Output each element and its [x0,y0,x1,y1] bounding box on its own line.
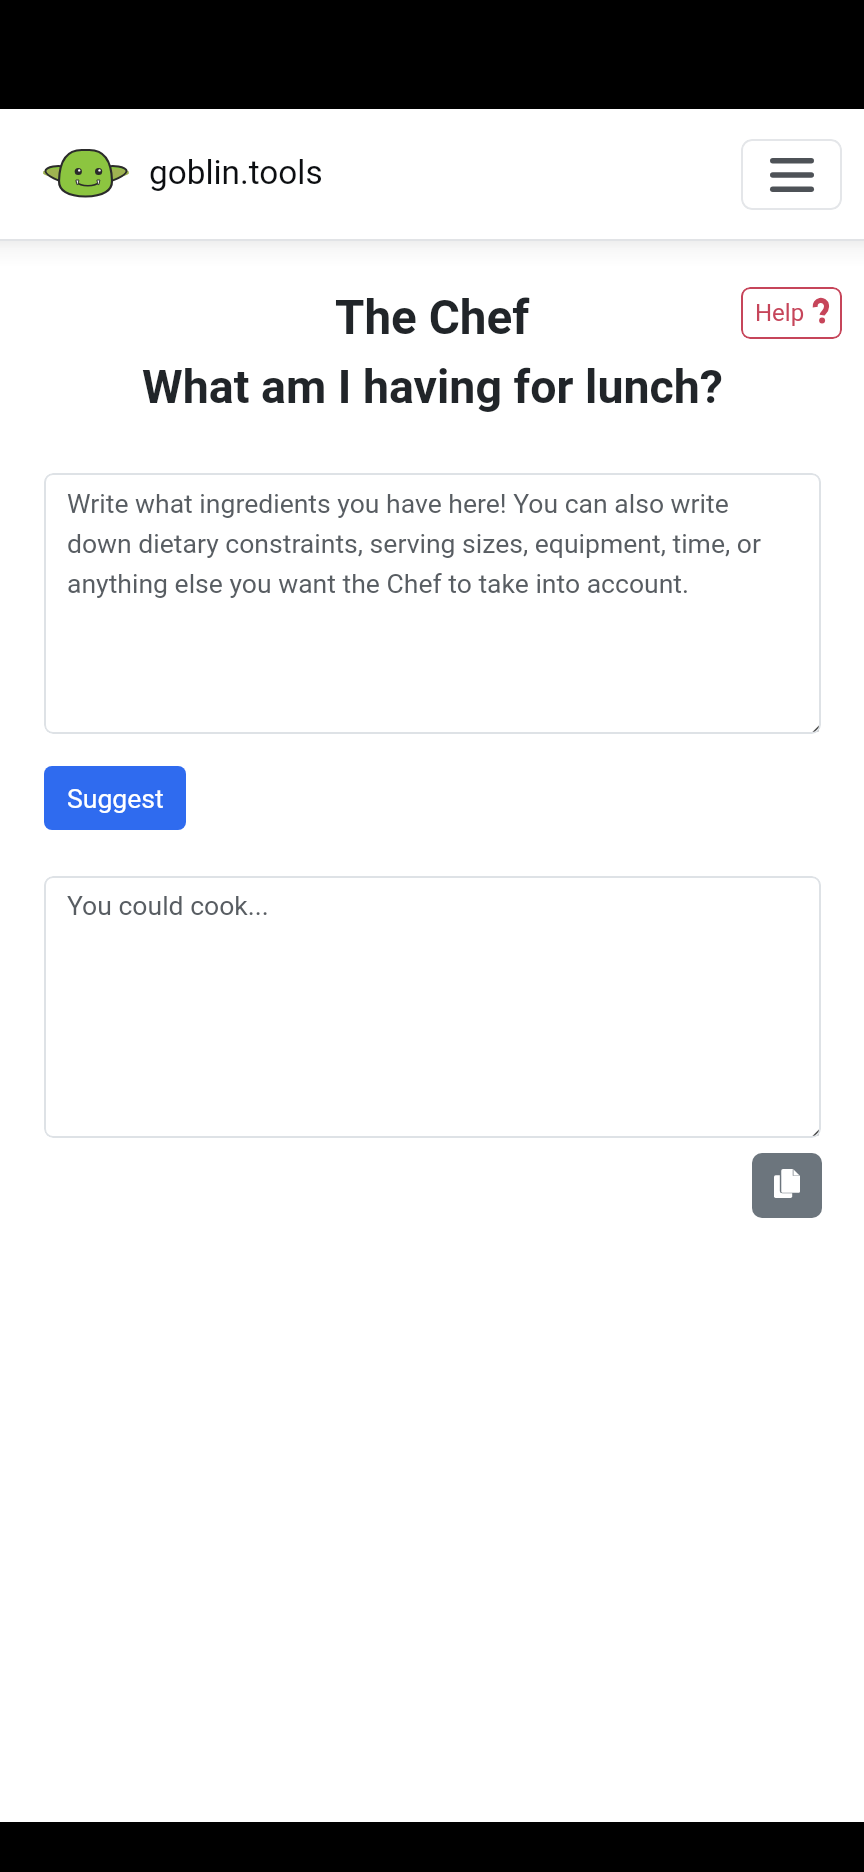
button[interactable]: Write what ingredients you have here! Yo… [44,473,821,734]
button[interactable]: Copy result [752,1153,822,1218]
staticText: You could cook... [67,890,269,921]
button[interactable]: You could cook... [44,876,821,1138]
staticText: The Chef [335,290,530,346]
button[interactable]: goblin.tools [43,147,323,201]
staticText: What am I having for lunch? [142,360,723,414]
button[interactable]: Open menu [741,139,842,210]
staticText: Write what ingredients you have here! Yo… [67,488,794,599]
button[interactable]: Suggest [44,766,186,830]
staticText: goblin.tools [149,153,323,192]
staticText: Suggest [67,783,164,814]
button[interactable]: Help [741,287,842,339]
staticText: Help [755,299,805,327]
